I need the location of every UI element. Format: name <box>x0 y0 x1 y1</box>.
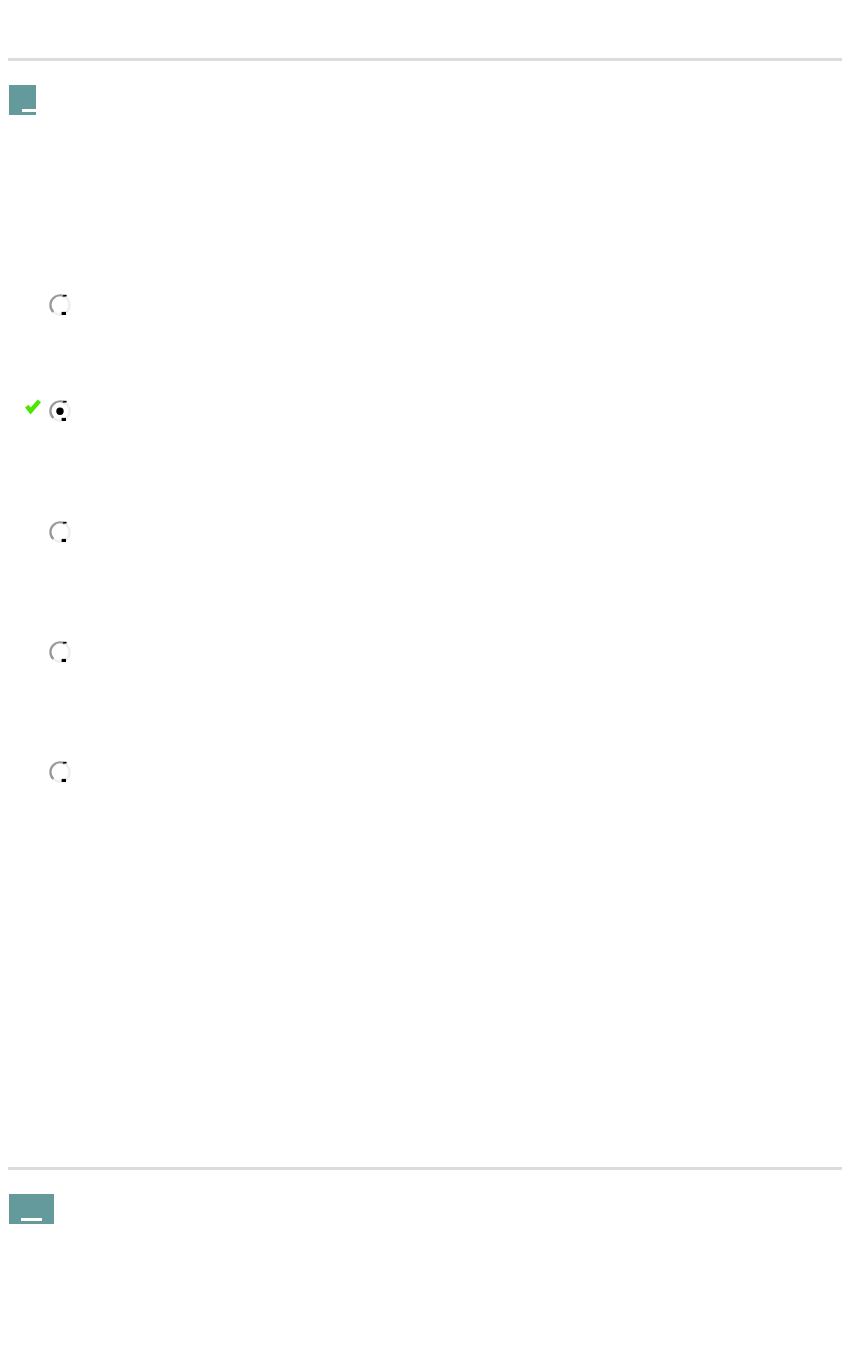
button[interactable]: Confirm <box>9 1194 54 1224</box>
button[interactable]: Option 4 <box>0 630 851 674</box>
button[interactable]: Option 5 <box>0 750 851 794</box>
button[interactable]: Option 1 <box>0 283 851 327</box>
button[interactable]: Option 2 <box>0 389 851 433</box>
button[interactable]: Navigate up <box>9 85 36 115</box>
button[interactable]: Option 3 <box>0 510 851 554</box>
